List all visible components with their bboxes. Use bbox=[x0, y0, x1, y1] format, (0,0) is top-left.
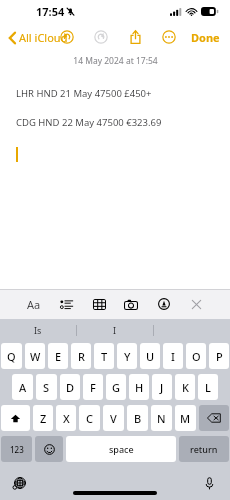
button[interactable]: Checklist bbox=[54, 292, 78, 316]
button[interactable]: R bbox=[71, 343, 91, 369]
staticText: Y bbox=[124, 349, 131, 364]
button[interactable]: D bbox=[60, 374, 80, 400]
button[interactable]: F bbox=[83, 374, 103, 400]
staticText: Done bbox=[191, 30, 220, 45]
button[interactable]: Done bbox=[189, 26, 222, 49]
staticText: LHR HND 21 May 47500 £450+ bbox=[16, 87, 152, 100]
staticText: I bbox=[171, 349, 175, 364]
button[interactable]: J bbox=[152, 374, 172, 400]
staticText: C bbox=[86, 411, 93, 426]
button[interactable]: L bbox=[198, 374, 218, 400]
button[interactable]: I bbox=[77, 319, 153, 341]
staticText: Aa bbox=[27, 297, 41, 312]
button[interactable]: G bbox=[106, 374, 126, 400]
button[interactable]: Redo bbox=[89, 25, 113, 49]
button[interactable]: More bbox=[157, 25, 181, 49]
button[interactable]: 123 bbox=[1, 436, 32, 462]
button[interactable]: U bbox=[140, 343, 160, 369]
button[interactable]: A bbox=[12, 374, 33, 400]
staticText: H bbox=[135, 380, 144, 395]
staticText: All iCloud bbox=[19, 30, 68, 45]
staticText: 123 bbox=[10, 444, 24, 455]
staticText: Is bbox=[34, 324, 42, 336]
button[interactable]: return bbox=[179, 436, 229, 462]
staticText: N bbox=[157, 411, 166, 426]
button[interactable]: X bbox=[56, 405, 76, 431]
button[interactable]: V bbox=[103, 405, 124, 431]
button[interactable]: space bbox=[66, 436, 176, 462]
button[interactable]: Text format bbox=[22, 292, 46, 316]
button[interactable]: Dictation bbox=[198, 472, 220, 494]
button[interactable]: Is bbox=[0, 319, 76, 341]
staticText: Q bbox=[7, 349, 16, 364]
button[interactable]: S bbox=[36, 374, 57, 400]
button[interactable]: B bbox=[127, 405, 148, 431]
staticText: F bbox=[90, 380, 96, 395]
button[interactable]: Share bbox=[123, 25, 147, 49]
staticText: 14 May 2024 at 17:54 bbox=[73, 55, 158, 67]
staticText: E bbox=[55, 349, 62, 364]
button[interactable]: Undo bbox=[55, 25, 79, 49]
button[interactable]: Q bbox=[1, 343, 22, 369]
staticText: A bbox=[19, 380, 27, 395]
staticText: M bbox=[180, 411, 191, 426]
staticText: G bbox=[112, 380, 120, 395]
staticText: J bbox=[160, 380, 164, 395]
button[interactable]: Shift bbox=[1, 405, 30, 431]
staticText: P bbox=[216, 349, 223, 364]
staticText: Z bbox=[40, 411, 47, 426]
staticText: D bbox=[66, 380, 75, 395]
staticText: space bbox=[109, 443, 134, 455]
staticText: T bbox=[101, 349, 108, 364]
button[interactable]: E bbox=[48, 343, 68, 369]
staticText: L bbox=[205, 380, 211, 395]
button[interactable]: K bbox=[175, 374, 195, 400]
staticText: CDG HND 22 May 47500 €323.69 bbox=[16, 116, 162, 129]
staticText: B bbox=[134, 411, 142, 426]
button[interactable]: Z bbox=[33, 405, 53, 431]
staticText: S bbox=[43, 380, 50, 395]
button[interactable]: T bbox=[94, 343, 114, 369]
button[interactable]: M bbox=[175, 405, 196, 431]
button[interactable]: All iCloud bbox=[6, 26, 71, 49]
staticText: 17:54 bbox=[36, 4, 65, 19]
button[interactable]: Y bbox=[117, 343, 137, 369]
button[interactable]: I bbox=[163, 343, 183, 369]
button[interactable]: W bbox=[25, 343, 45, 369]
button[interactable]: O bbox=[186, 343, 206, 369]
staticText: W bbox=[30, 349, 41, 364]
button[interactable]: P bbox=[209, 343, 229, 369]
staticText: return bbox=[190, 443, 218, 455]
button[interactable]: Table bbox=[87, 292, 111, 316]
staticText: X bbox=[63, 411, 70, 426]
button[interactable]: N bbox=[151, 405, 172, 431]
button[interactable]: Switch keyboard bbox=[8, 472, 30, 494]
staticText: I bbox=[113, 324, 117, 336]
button[interactable]: Camera bbox=[119, 292, 143, 316]
button[interactable]: Markup bbox=[152, 292, 176, 316]
staticText: U bbox=[146, 349, 155, 364]
button[interactable]: Delete bbox=[199, 405, 229, 431]
staticText: V bbox=[110, 411, 117, 426]
button[interactable]: C bbox=[79, 405, 100, 431]
staticText: O bbox=[192, 349, 201, 364]
button[interactable]: Emoji bbox=[35, 436, 63, 462]
staticText: K bbox=[182, 380, 189, 395]
button[interactable]: H bbox=[129, 374, 149, 400]
staticText: R bbox=[78, 349, 85, 364]
button[interactable]: Close keyboard bbox=[184, 292, 208, 316]
